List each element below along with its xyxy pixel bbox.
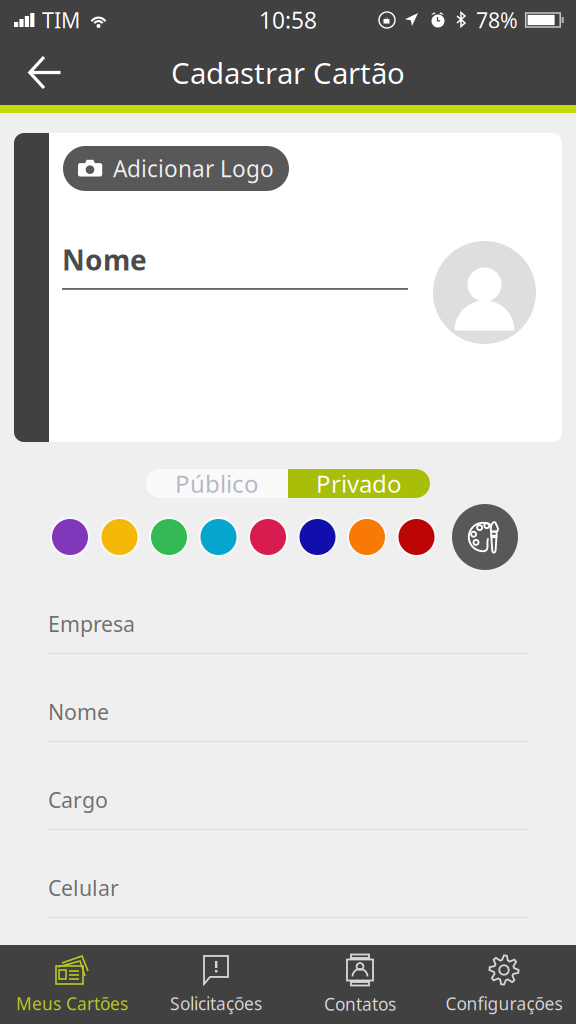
- button[interactable]: Colour option: [198, 517, 238, 557]
- button[interactable]: Público: [146, 469, 288, 498]
- button[interactable]: Meus Cartões: [0, 945, 144, 1024]
- staticText: Privado: [316, 468, 402, 499]
- staticText: Contatos: [324, 992, 396, 1015]
- button[interactable]: Privado: [288, 469, 430, 498]
- button[interactable]: Colour option: [347, 517, 387, 557]
- button[interactable]: Configurações: [432, 945, 576, 1024]
- staticText: 78%: [476, 6, 518, 34]
- staticText: Meus Cartões: [16, 992, 128, 1015]
- staticText: Celular: [48, 874, 119, 902]
- button[interactable]: Colour option: [149, 517, 189, 557]
- button[interactable]: Colour option: [50, 517, 90, 557]
- staticText: Nome: [48, 698, 109, 726]
- staticText: Público: [175, 468, 259, 499]
- staticText: Configurações: [445, 992, 562, 1015]
- button[interactable]: Contatos: [288, 945, 432, 1024]
- button[interactable]: Colour option: [99, 517, 139, 557]
- button[interactable]: Colour option: [248, 517, 288, 557]
- staticText: Solicitações: [170, 992, 262, 1015]
- staticText: 10:58: [259, 5, 317, 35]
- button[interactable]: Solicitações: [144, 945, 288, 1024]
- staticText: Cargo: [48, 786, 108, 814]
- button[interactable]: Back: [0, 42, 78, 102]
- button[interactable]: Adicionar Logo: [63, 146, 289, 191]
- staticText: Nome: [62, 241, 147, 278]
- button[interactable]: Custom colour: [452, 504, 518, 570]
- staticText: Empresa: [48, 610, 135, 638]
- staticText: Cadastrar Cartão: [171, 53, 405, 92]
- staticText: Adicionar Logo: [113, 153, 274, 183]
- staticText: TIM: [42, 6, 80, 34]
- button[interactable]: Colour option: [297, 517, 337, 557]
- button[interactable]: Colour option: [396, 517, 436, 557]
